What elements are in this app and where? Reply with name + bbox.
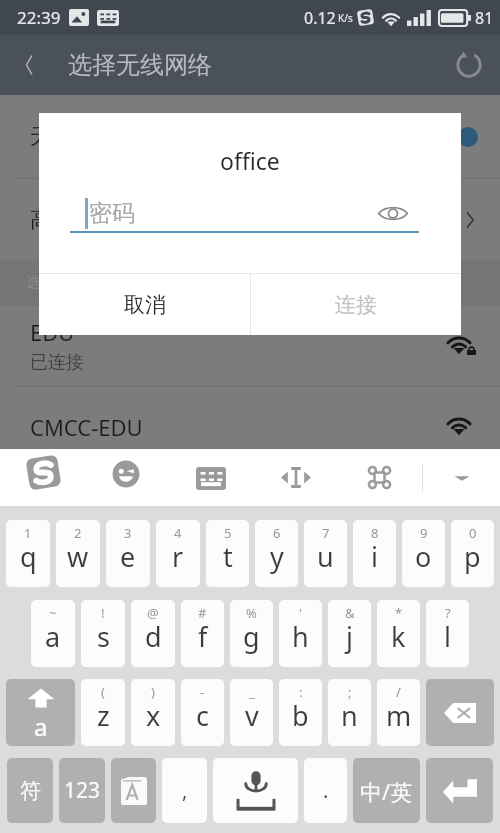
button[interactable]: * — [377, 600, 420, 667]
button[interactable]: 2 — [56, 520, 100, 587]
button[interactable]: 7 — [304, 520, 347, 587]
staticText: o — [415, 538, 432, 575]
staticText: ! — [101, 604, 105, 622]
staticText: 0 — [469, 524, 477, 542]
button[interactable]: Sogou — [12, 449, 75, 506]
staticText: - — [200, 683, 205, 701]
staticText: ( — [101, 683, 105, 701]
staticText: 8 — [371, 524, 379, 542]
staticText: # — [198, 604, 207, 622]
button[interactable]: 无线网络 — [0, 95, 500, 178]
staticText: ; — [348, 683, 352, 701]
button[interactable]: _ — [230, 679, 273, 746]
button[interactable]: - — [181, 679, 224, 746]
staticText: 4 — [174, 524, 182, 542]
button[interactable]: @ — [131, 600, 175, 667]
staticText: ~ — [49, 604, 57, 622]
button[interactable]: # — [181, 600, 224, 667]
button[interactable]: Backspace — [426, 679, 494, 746]
staticText: j — [346, 618, 353, 655]
staticText: s — [97, 618, 110, 655]
staticText: a — [45, 618, 61, 655]
button[interactable]: Space — [213, 758, 298, 823]
button[interactable]: Language — [111, 758, 156, 823]
button[interactable]: , — [162, 758, 207, 823]
button[interactable]: 0 — [451, 520, 494, 587]
staticText: l — [444, 618, 451, 655]
staticText: office — [220, 145, 280, 176]
button[interactable]: 中/英 — [353, 758, 420, 823]
staticText: ? — [445, 604, 451, 622]
button[interactable]: ) — [131, 679, 175, 746]
button[interactable]: % — [230, 600, 273, 667]
button[interactable]: 取消 — [39, 274, 250, 335]
button[interactable]: 8 — [353, 520, 396, 587]
staticText: v — [245, 697, 259, 734]
button[interactable]: & — [328, 600, 371, 667]
staticText: : — [299, 683, 303, 701]
staticText: % — [246, 604, 257, 622]
button[interactable]: ' — [279, 600, 322, 667]
button[interactable]: ! — [81, 600, 125, 667]
staticText: 选择网络 — [26, 274, 82, 292]
button[interactable]: ? — [426, 600, 469, 667]
staticText: q — [20, 538, 37, 575]
staticText: f — [198, 618, 208, 655]
button[interactable]: 9 — [402, 520, 445, 587]
staticText: y — [270, 538, 284, 575]
staticText: 2 — [74, 524, 82, 542]
staticText: w — [67, 538, 89, 575]
button[interactable]: Cursor — [265, 449, 327, 506]
staticText: . — [323, 777, 329, 804]
staticText: / — [396, 683, 401, 701]
staticText: 选择无线网络 — [68, 50, 212, 80]
staticText: e — [120, 538, 136, 575]
staticText: 5 — [224, 524, 232, 542]
button[interactable]: 1 — [6, 520, 50, 587]
staticText: _ — [249, 683, 255, 701]
button[interactable]: Show password — [369, 193, 417, 233]
staticText: t — [223, 538, 233, 575]
staticText: u — [317, 538, 334, 575]
staticText: m — [386, 697, 412, 734]
button[interactable]: 高级设置 — [0, 179, 500, 260]
button[interactable]: 4 — [156, 520, 200, 587]
staticText: 密码 — [89, 199, 135, 228]
button[interactable]: Keyboard — [182, 449, 240, 506]
staticText: 6 — [273, 524, 281, 542]
button[interactable]: 123 — [59, 758, 105, 823]
staticText: 123 — [64, 776, 101, 805]
button[interactable]: / — [377, 679, 420, 746]
button[interactable]: Refresh — [438, 35, 500, 95]
staticText: * — [395, 604, 403, 622]
button[interactable]: 连接 — [251, 274, 461, 335]
button[interactable]: ; — [328, 679, 371, 746]
staticText: 已连接 — [30, 351, 84, 374]
staticText: k — [391, 618, 406, 655]
button[interactable]: Enter — [426, 758, 493, 823]
button[interactable]: : — [279, 679, 322, 746]
staticText: 1 — [24, 524, 32, 542]
button[interactable]: 5 — [206, 520, 249, 587]
staticText: 连接 — [335, 292, 377, 318]
button[interactable]: Input method — [353, 449, 407, 506]
button[interactable]: ~ — [31, 600, 75, 667]
staticText: ) — [151, 683, 155, 701]
staticText: x — [146, 697, 161, 734]
button[interactable]: Shift — [6, 679, 75, 746]
staticText: 22:39 — [17, 6, 61, 29]
button[interactable]: CMCC-EDU — [0, 387, 500, 467]
button[interactable]: Emoji — [98, 449, 154, 506]
button[interactable]: Back — [0, 35, 58, 95]
staticText: EDU — [30, 317, 75, 347]
button[interactable]: . — [304, 758, 347, 823]
staticText: ' — [299, 604, 302, 622]
button[interactable]: EDU — [0, 306, 500, 385]
button[interactable]: 6 — [255, 520, 298, 587]
button[interactable]: Hide keyboard — [424, 449, 500, 506]
staticText: c — [196, 697, 209, 734]
staticText: 中/英 — [360, 776, 413, 806]
button[interactable]: 3 — [106, 520, 150, 587]
button[interactable]: 符 — [7, 758, 53, 823]
button[interactable]: ( — [81, 679, 125, 746]
